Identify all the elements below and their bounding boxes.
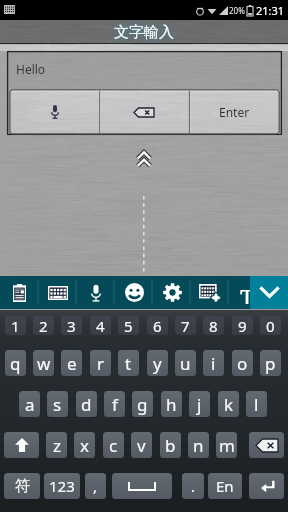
staticText: l [254,393,259,416]
button[interactable]: 5 [118,316,139,335]
staticText: 文字輸入 [114,23,174,42]
button[interactable]: w [33,350,54,376]
button[interactable]: Settings [153,276,191,309]
staticText: 123 [49,476,75,496]
button[interactable]: m [216,432,237,458]
button[interactable]: 4 [90,316,111,335]
button[interactable]: e [61,350,82,376]
button[interactable]: 符 [4,473,40,499]
staticText: o [237,352,248,375]
staticText: 符 [15,477,30,496]
button[interactable]: Move keyboard [191,276,229,309]
button[interactable]: Voice input [77,276,115,309]
button[interactable]: Voice input [10,90,99,134]
button[interactable]: p [260,350,281,376]
button[interactable]: a [19,391,40,417]
button[interactable]: 9 [232,316,253,335]
staticText: e [67,352,77,375]
staticText: n [193,434,204,457]
staticText: d [81,393,92,416]
button[interactable]: r [90,350,111,376]
button[interactable]: s [47,391,68,417]
staticText: m [219,434,235,457]
button[interactable]: En [208,473,242,499]
staticText: T [240,282,255,304]
staticText: q [10,352,21,375]
button[interactable]: 0 [260,316,281,335]
staticText: 1 [11,316,20,335]
button[interactable]: Enter [189,90,279,134]
staticText: j [197,393,202,416]
staticText: 5 [124,316,133,335]
staticText: p [265,352,276,375]
staticText: s [53,393,62,416]
staticText: t [125,352,132,375]
button[interactable]: Emoji [115,276,153,309]
button[interactable]: k [218,391,239,417]
button[interactable]: 2 [33,316,54,335]
button[interactable]: . [182,473,204,499]
staticText: Enter [219,104,250,120]
button[interactable]: x [74,432,95,458]
button[interactable]: Keyboard [39,276,77,309]
staticText: Hello [16,61,46,77]
staticText: . [191,476,196,496]
staticText: g [137,393,148,416]
staticText: 0 [266,316,275,335]
button[interactable]: Backspace [99,90,189,134]
button[interactable]: b [160,432,181,458]
staticText: 9 [238,316,247,335]
button[interactable]: 8 [203,316,224,335]
staticText: x [80,434,89,457]
button[interactable]: d [76,391,97,417]
staticText: 7 [181,316,190,335]
button[interactable]: u [175,350,196,376]
staticText: y [153,352,162,375]
button[interactable]: Space [112,473,172,499]
button[interactable]: 6 [147,316,168,335]
button[interactable]: 123 [44,473,80,499]
button[interactable]: 3 [61,316,82,335]
staticText: c [109,434,118,457]
staticText: 3 [67,316,76,335]
button[interactable]: g [132,391,153,417]
button[interactable]: Backspace [249,432,284,458]
button[interactable]: Shift [4,432,39,458]
button[interactable]: Clipboard [0,276,39,309]
staticText: 6 [153,316,162,335]
staticText: w [37,352,51,375]
staticText: f [112,393,118,416]
button[interactable]: n [188,432,209,458]
staticText: 4 [96,316,105,335]
button[interactable]: 7 [175,316,196,335]
button[interactable]: y [147,350,168,376]
staticText: , [93,476,98,496]
button[interactable]: f [104,391,125,417]
staticText: h [166,393,177,416]
staticText: 8 [209,316,218,335]
button[interactable]: Enter [249,473,284,499]
button[interactable]: z [46,432,67,458]
staticText: v [137,434,146,457]
button[interactable]: , [85,473,106,499]
staticText: u [180,352,191,375]
staticText: 20% [229,5,245,16]
button[interactable]: l [246,391,267,417]
button[interactable]: o [232,350,253,376]
staticText: 2 [39,316,48,335]
staticText: i [211,352,216,375]
button[interactable]: c [103,432,124,458]
button[interactable]: Text style [229,276,267,309]
button[interactable]: j [189,391,210,417]
button[interactable]: h [161,391,182,417]
button[interactable]: q [5,350,26,376]
button[interactable]: Hide keyboard [250,276,288,309]
button[interactable]: 1 [5,316,26,335]
staticText: 21:31 [256,3,285,18]
staticText: k [224,393,234,416]
staticText: r [97,352,105,375]
staticText: b [165,434,176,457]
button[interactable]: i [203,350,224,376]
button[interactable]: t [118,350,139,376]
button[interactable]: v [131,432,152,458]
